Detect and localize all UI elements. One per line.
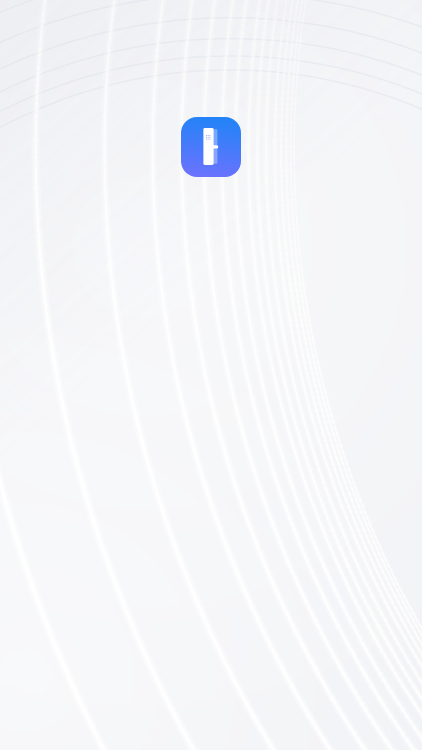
button[interactable]: Smart door lock app icon bbox=[181, 117, 241, 177]
